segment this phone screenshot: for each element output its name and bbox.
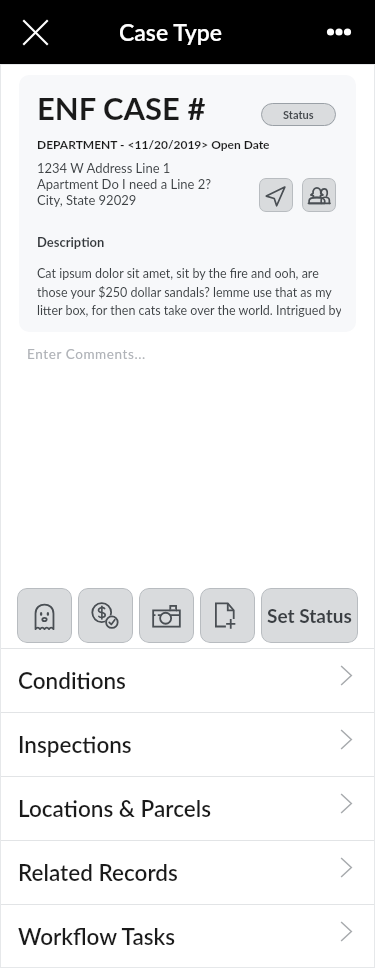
staticText: ENF CASE # xyxy=(37,89,206,126)
button[interactable]: Set Status xyxy=(261,588,358,643)
staticText: Cat ipsum dolor sit amet, sit by the fir… xyxy=(37,266,341,318)
staticText: Case Type xyxy=(119,18,223,46)
button[interactable]: Inspections xyxy=(0,713,375,776)
button[interactable]: More options xyxy=(317,10,361,54)
staticText: DEPARTMENT - <11/20/2019> Open Date xyxy=(37,137,270,151)
button[interactable]: Locations & Parcels xyxy=(0,777,375,840)
button[interactable]: Enter Comments... xyxy=(0,332,375,376)
button[interactable]: Conditions xyxy=(0,649,375,712)
button[interactable]: Add document xyxy=(200,588,255,643)
button[interactable]: Related Records xyxy=(0,841,375,904)
staticText: Locations & Parcels xyxy=(18,795,211,822)
staticText: Conditions xyxy=(18,667,126,694)
button[interactable]: Camera xyxy=(139,588,194,643)
staticText: Inspections xyxy=(18,731,132,758)
button[interactable]: Contacts xyxy=(302,178,336,212)
staticText: Apartment Do I need a Line 2? xyxy=(37,176,212,192)
button[interactable]: Status xyxy=(261,103,336,126)
staticText: Workflow Tasks xyxy=(18,923,176,950)
button[interactable]: Directions xyxy=(259,178,293,212)
staticText: Description xyxy=(37,234,105,250)
button[interactable]: Close xyxy=(11,8,59,56)
staticText: Status xyxy=(283,108,314,121)
button[interactable]: Ghost xyxy=(17,588,72,643)
staticText: Enter Comments... xyxy=(27,346,146,362)
button[interactable]: Payments xyxy=(78,588,133,643)
staticText: 1234 W Address Line 1 xyxy=(37,160,171,176)
staticText: Set Status xyxy=(267,604,352,627)
staticText: City, State 92029 xyxy=(37,192,137,208)
staticText: Related Records xyxy=(18,859,178,886)
button[interactable]: Workflow Tasks xyxy=(0,905,375,968)
